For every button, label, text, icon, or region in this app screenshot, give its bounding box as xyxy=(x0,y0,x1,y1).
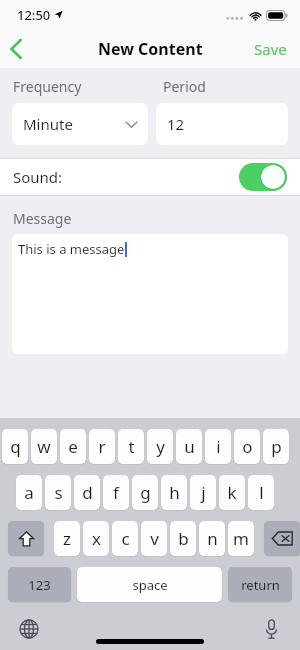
button[interactable]: d xyxy=(74,475,100,510)
staticText: 123 xyxy=(28,576,51,594)
staticText: n xyxy=(207,527,218,550)
staticText: space xyxy=(132,576,168,594)
button[interactable]: q xyxy=(2,429,28,464)
staticText: x xyxy=(92,527,101,550)
button[interactable]: 12 xyxy=(156,103,288,145)
staticText: Period xyxy=(163,77,206,96)
staticText: o xyxy=(242,435,253,458)
button[interactable]: t xyxy=(118,429,144,464)
button[interactable]: o xyxy=(234,429,260,464)
button[interactable]: Dictate xyxy=(256,614,286,644)
button[interactable]: b xyxy=(170,521,196,556)
staticText: b xyxy=(178,527,189,550)
staticText: y xyxy=(156,435,165,458)
staticText: Frequency xyxy=(13,77,82,96)
staticText: m xyxy=(233,527,249,550)
staticText: This is a message xyxy=(18,240,125,258)
button[interactable]: l xyxy=(248,475,274,510)
staticText: t xyxy=(128,435,135,458)
button[interactable]: i xyxy=(205,429,231,464)
button[interactable]: Shift xyxy=(8,521,44,556)
button[interactable]: a xyxy=(16,475,42,510)
staticText: v xyxy=(150,527,159,550)
button[interactable]: e xyxy=(60,429,86,464)
button[interactable]: Sound toggle xyxy=(239,163,287,191)
staticText: g xyxy=(140,481,151,504)
button[interactable]: g xyxy=(132,475,158,510)
staticText: r xyxy=(98,435,106,458)
button[interactable]: Save xyxy=(241,31,300,67)
button[interactable]: 123 xyxy=(8,567,71,602)
staticText: 12:50 xyxy=(17,6,51,24)
staticText: 12 xyxy=(167,114,185,134)
button[interactable]: r xyxy=(89,429,115,464)
button[interactable]: Back xyxy=(0,30,40,68)
button[interactable]: h xyxy=(161,475,187,510)
staticText: New Content xyxy=(98,38,203,60)
button[interactable]: Minute xyxy=(12,103,148,145)
staticText: d xyxy=(82,481,93,504)
staticText: s xyxy=(54,481,63,504)
staticText: w xyxy=(37,435,51,458)
staticText: return xyxy=(241,576,280,594)
staticText: u xyxy=(184,435,195,458)
staticText: k xyxy=(227,481,237,504)
staticText: Save xyxy=(254,39,287,59)
staticText: p xyxy=(271,435,282,458)
button[interactable]: Change keyboard language xyxy=(14,614,44,644)
button[interactable]: c xyxy=(112,521,138,556)
button[interactable]: w xyxy=(31,429,57,464)
staticText: h xyxy=(169,481,180,504)
button[interactable]: p xyxy=(263,429,289,464)
staticText: a xyxy=(24,481,34,504)
button[interactable]: return xyxy=(228,567,292,602)
button[interactable]: z xyxy=(54,521,80,556)
staticText: Message xyxy=(13,209,72,228)
button[interactable]: f xyxy=(103,475,129,510)
button[interactable]: j xyxy=(190,475,216,510)
staticText: Sound: xyxy=(13,167,63,187)
button[interactable]: v xyxy=(141,521,167,556)
button[interactable]: x xyxy=(83,521,109,556)
button[interactable]: m xyxy=(228,521,254,556)
staticText: c xyxy=(121,527,130,550)
button[interactable]: k xyxy=(219,475,245,510)
staticText: Minute xyxy=(23,114,73,134)
button[interactable]: Delete xyxy=(264,521,300,556)
staticText: j xyxy=(201,481,206,504)
staticText: f xyxy=(113,481,119,504)
button[interactable]: n xyxy=(199,521,225,556)
button[interactable]: u xyxy=(176,429,202,464)
button[interactable]: y xyxy=(147,429,173,464)
staticText: z xyxy=(63,527,71,550)
button[interactable]: Sound: xyxy=(0,159,300,195)
button[interactable]: s xyxy=(45,475,71,510)
staticText: i xyxy=(216,435,221,458)
staticText: e xyxy=(68,435,78,458)
staticText: l xyxy=(259,481,264,504)
button[interactable]: This is a message xyxy=(12,234,288,354)
staticText: q xyxy=(10,435,21,458)
button[interactable]: space xyxy=(77,567,222,602)
